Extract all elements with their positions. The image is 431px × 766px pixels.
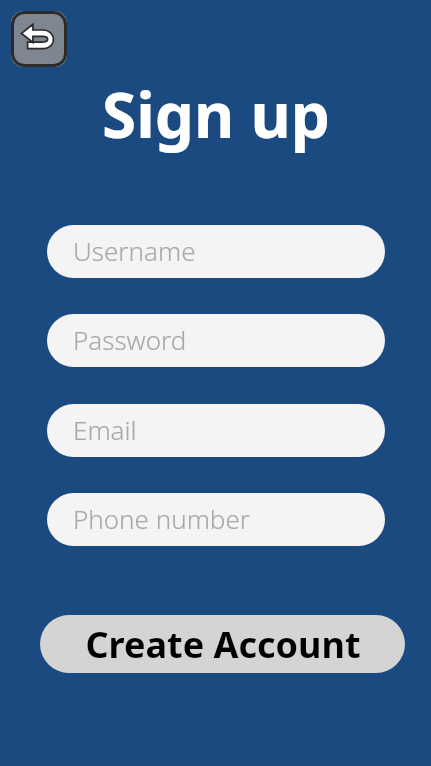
staticText: Create Account: [85, 620, 361, 669]
button[interactable]: Password: [47, 314, 385, 367]
staticText: Password: [73, 322, 187, 357]
staticText: Username: [73, 233, 196, 268]
button[interactable]: Back: [11, 11, 67, 67]
button[interactable]: Username: [47, 225, 385, 278]
staticText: Phone number: [73, 501, 251, 536]
staticText: Email: [73, 412, 137, 447]
button[interactable]: Email: [47, 404, 385, 457]
button[interactable]: Phone number: [47, 493, 385, 546]
button[interactable]: Create Account: [40, 615, 405, 673]
staticText: Sign up: [102, 72, 330, 156]
